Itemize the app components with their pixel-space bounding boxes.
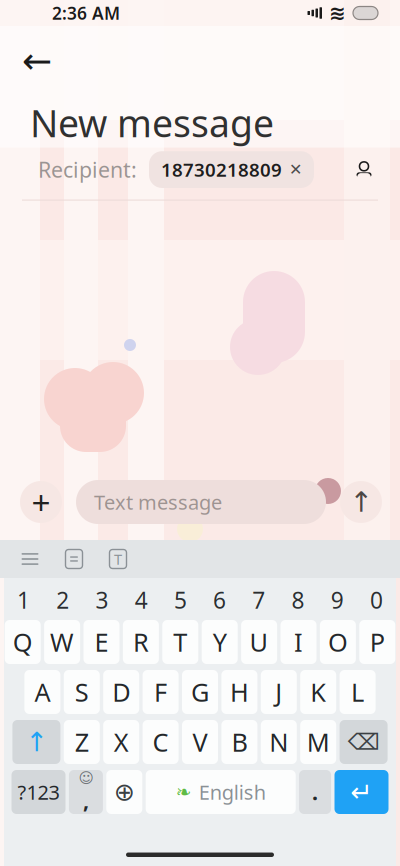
button[interactable]: Clipboard <box>54 541 94 577</box>
button[interactable]: N <box>261 720 297 764</box>
button[interactable]: A <box>24 670 60 714</box>
button[interactable]: K <box>300 670 336 714</box>
button[interactable]: Period <box>299 770 331 814</box>
button[interactable]: L <box>340 670 376 714</box>
button[interactable]: S <box>64 670 100 714</box>
staticText: + <box>31 480 50 524</box>
staticText: W <box>50 625 74 659</box>
staticText: ↑ <box>25 727 47 757</box>
button[interactable]: 9 <box>318 585 357 615</box>
staticText: 2:36 AM <box>52 1 120 24</box>
button[interactable]: M <box>300 720 336 764</box>
button[interactable]: 8 <box>278 585 318 615</box>
button[interactable]: Text tools <box>98 541 138 577</box>
staticText: English <box>199 779 266 805</box>
staticText: ↑ <box>349 486 372 518</box>
button[interactable]: 2 <box>43 585 82 615</box>
button[interactable]: Z <box>64 720 100 764</box>
button[interactable]: X <box>103 720 139 764</box>
button[interactable]: Y <box>202 620 238 664</box>
staticText: ✕ <box>289 160 302 179</box>
staticText: ⊕ <box>114 778 135 806</box>
button[interactable]: ?123 <box>11 770 65 814</box>
staticText: 5 <box>174 585 187 615</box>
staticText: Q <box>13 625 33 659</box>
button[interactable]: J <box>261 670 297 714</box>
staticText: ≋ <box>329 2 346 24</box>
staticText: U <box>250 625 269 659</box>
staticText: Recipient: <box>38 155 137 184</box>
button[interactable]: Change language <box>106 770 142 814</box>
staticText: E <box>94 625 108 659</box>
button[interactable]: 6 <box>200 585 239 615</box>
button[interactable]: O <box>320 620 356 664</box>
staticText: V <box>192 725 207 759</box>
button[interactable]: Backspace <box>340 720 388 764</box>
button[interactable]: 3 <box>82 585 122 615</box>
staticText: K <box>310 675 326 709</box>
button[interactable]: 7 <box>239 585 278 615</box>
staticText: C <box>153 725 169 759</box>
staticText: New message <box>30 98 274 148</box>
button[interactable]: Shift <box>12 720 60 764</box>
staticText: A <box>34 675 50 709</box>
button[interactable]: 0 <box>357 585 396 615</box>
staticText: Text message <box>94 489 222 515</box>
button[interactable]: W <box>44 620 80 664</box>
button[interactable]: 18730218809 <box>149 151 314 188</box>
staticText: T <box>173 625 187 659</box>
button[interactable]: 5 <box>161 585 200 615</box>
button[interactable]: Text message <box>76 480 326 524</box>
button[interactable]: Keyboard menu <box>10 541 50 577</box>
button[interactable]: H <box>221 670 257 714</box>
staticText: 6 <box>213 585 226 615</box>
staticText: D <box>112 675 130 709</box>
staticText: N <box>269 725 288 759</box>
staticText: I <box>294 625 303 659</box>
staticText: T <box>114 549 122 569</box>
button[interactable]: R <box>123 620 159 664</box>
staticText: B <box>231 725 247 759</box>
button[interactable]: I <box>280 620 316 664</box>
staticText: Z <box>75 725 89 759</box>
button[interactable]: P <box>359 620 395 664</box>
button[interactable]: 4 <box>122 585 161 615</box>
staticText: 4 <box>135 585 148 615</box>
button[interactable]: C <box>143 720 179 764</box>
staticText: ☺ <box>78 769 93 786</box>
staticText: 9 <box>331 585 344 615</box>
staticText: H <box>230 675 249 709</box>
staticText: 3 <box>95 585 108 615</box>
button[interactable]: B <box>221 720 257 764</box>
staticText: 2 <box>56 585 69 615</box>
staticText: L <box>351 675 364 709</box>
button[interactable]: V <box>182 720 218 764</box>
button[interactable]: Add attachment <box>20 481 62 523</box>
button[interactable]: Enter <box>334 770 388 814</box>
button[interactable]: E <box>83 620 119 664</box>
button[interactable]: ❧ <box>146 770 296 814</box>
staticText: 8 <box>291 585 304 615</box>
button[interactable]: Send <box>340 481 382 523</box>
button[interactable]: U <box>241 620 277 664</box>
staticText: ← <box>22 41 52 81</box>
staticText: 0 <box>370 585 383 615</box>
button[interactable]: 1 <box>4 585 43 615</box>
button[interactable]: Back <box>14 38 60 84</box>
staticText: ⌫ <box>348 729 380 755</box>
staticText: ❧ <box>176 781 192 803</box>
staticText: J <box>275 675 282 709</box>
button[interactable]: T <box>162 620 198 664</box>
staticText: 18730218809 <box>161 157 282 182</box>
button[interactable]: D <box>103 670 139 714</box>
staticText: G <box>191 675 209 709</box>
button[interactable]: G <box>182 670 218 714</box>
staticText: ↵ <box>350 777 372 807</box>
staticText: P <box>370 625 385 659</box>
button[interactable]: Choose contact <box>342 150 386 190</box>
staticText: . <box>312 778 318 806</box>
button[interactable]: Emoji and comma <box>69 770 103 814</box>
staticText: S <box>75 675 89 709</box>
button[interactable]: F <box>143 670 179 714</box>
button[interactable]: Q <box>5 620 41 664</box>
